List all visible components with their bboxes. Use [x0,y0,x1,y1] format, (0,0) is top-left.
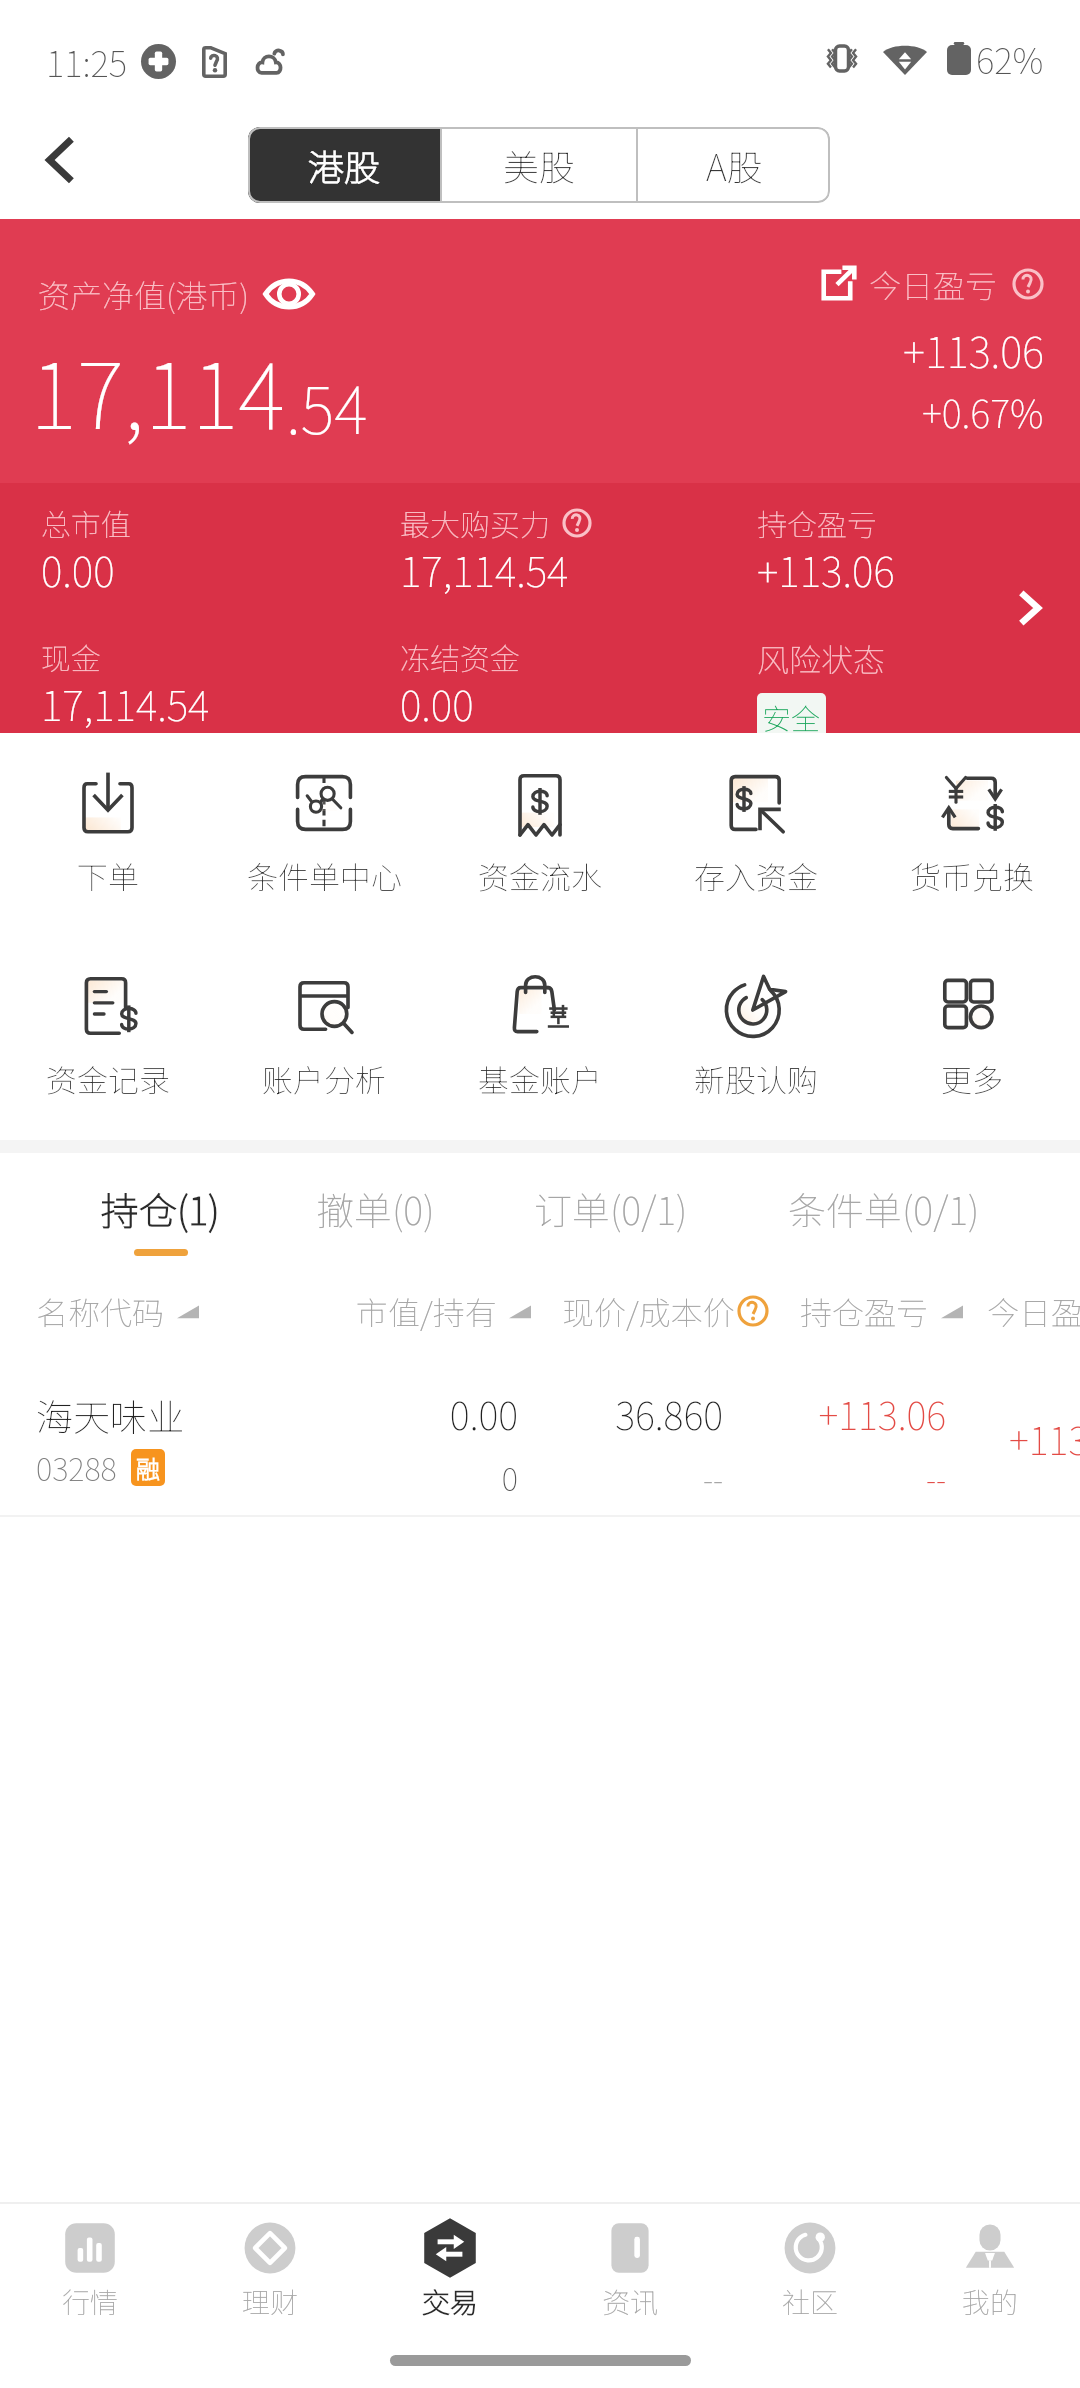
staticText: -- [702,1455,723,1500]
staticText: 撤单(0) [316,1181,435,1236]
button[interactable]: 我的 [900,2205,1080,2333]
button[interactable]: 基金账户 [432,966,648,1101]
staticText: 03288 [36,1445,117,1490]
staticText: 62% [976,33,1044,84]
staticText: 总市值 [41,501,131,544]
staticText: .54 [286,360,368,453]
staticText: 17,114 [30,325,286,455]
staticText: 0.00 [400,673,474,732]
staticText: A股 [706,139,763,191]
staticText: 持仓(1) [101,1181,220,1236]
button[interactable]: 行情 [0,2205,180,2333]
button[interactable]: 条件单中心 [216,763,432,898]
button[interactable]: Toggle balance visibility [264,269,314,319]
staticText: 条件单(0/1) [788,1181,980,1236]
staticText: 市值/持有 [356,1288,497,1334]
staticText: 货币兑换 [910,853,1034,898]
button[interactable]: 更多 [864,966,1080,1101]
button[interactable]: 美股 [442,127,636,203]
staticText: 订单(0/1) [534,1181,688,1236]
button[interactable]: 海天味业 [0,1360,1080,1517]
button[interactable]: 存入资金 [648,763,864,898]
staticText: 0.00 [41,539,115,598]
staticText: 持仓盈亏 [800,1288,929,1334]
staticText: 更多 [941,1056,1003,1101]
staticText: 安全 [762,696,821,738]
staticText: 存入资金 [694,853,818,898]
staticText: 资金记录 [46,1056,170,1101]
button[interactable]: 资金流水 [432,763,648,898]
staticText: 新股认购 [694,1056,818,1101]
staticText: 交易 [422,2281,479,2322]
button[interactable]: 今日盈亏 [821,261,1044,307]
staticText: +0.67% [922,384,1044,439]
button[interactable]: A股 [638,127,830,203]
staticText: -- [925,1455,946,1500]
button[interactable]: Account details [996,576,1060,640]
button[interactable]: 持仓(1) [95,1153,225,1262]
button[interactable]: 港股 [248,127,440,203]
staticText: 0 [501,1455,518,1500]
staticText: 下单 [77,853,139,898]
staticText: 持仓盈亏 [757,501,877,544]
staticText: 美股 [503,139,576,191]
staticText: 港股 [308,139,381,191]
staticText: 资讯 [602,2281,659,2322]
staticText: 今日盈亏 [987,1288,1080,1334]
staticText: 融 [136,1450,160,1485]
staticText: 今日盈亏 [869,261,998,307]
button[interactable]: 交易 [360,2205,540,2333]
staticText: 我的 [962,2281,1019,2322]
staticText: +113.06 [903,319,1044,380]
button[interactable]: 货币兑换 [864,763,1080,898]
button[interactable]: Back [16,115,106,205]
staticText: +113.06 [818,1386,946,1441]
staticText: 行情 [62,2281,119,2322]
staticText: 36.860 [615,1386,723,1441]
staticText: 资产净值(港币) [38,271,250,317]
staticText: 海天味业 [36,1388,184,1442]
staticText: 11:25 [46,36,128,87]
staticText: 条件单中心 [247,853,402,898]
staticText: 社区 [782,2281,839,2322]
staticText: 17,114.54 [41,673,210,732]
staticText: 理财 [242,2281,299,2322]
staticText: 风险状态 [757,635,886,681]
staticText: 现价/成本价 [562,1288,735,1334]
staticText: 账户分析 [262,1056,386,1101]
staticText: 冻结资金 [400,635,520,678]
button[interactable]: 下单 [0,763,216,898]
button[interactable]: 撤单(0) [310,1153,440,1262]
button[interactable]: 资讯 [540,2205,720,2333]
button[interactable]: 理财 [180,2205,360,2333]
button[interactable]: 新股认购 [648,966,864,1101]
button[interactable]: 资金记录 [0,966,216,1101]
button[interactable]: 社区 [720,2205,900,2333]
staticText: 资金流水 [478,853,602,898]
staticText: +113.06 [1009,1411,1080,1466]
staticText: 名称代码 [36,1288,165,1334]
staticText: 17,114.54 [400,539,569,598]
staticText: 0.00 [449,1386,518,1441]
staticText: 最大购买力 [400,501,550,544]
button[interactable]: 条件单(0/1) [778,1153,990,1262]
button[interactable]: 账户分析 [216,966,432,1101]
button[interactable]: 订单(0/1) [525,1153,697,1262]
staticText: +113.06 [757,539,895,598]
staticText: 现金 [41,635,101,678]
staticText: 基金账户 [478,1056,602,1101]
